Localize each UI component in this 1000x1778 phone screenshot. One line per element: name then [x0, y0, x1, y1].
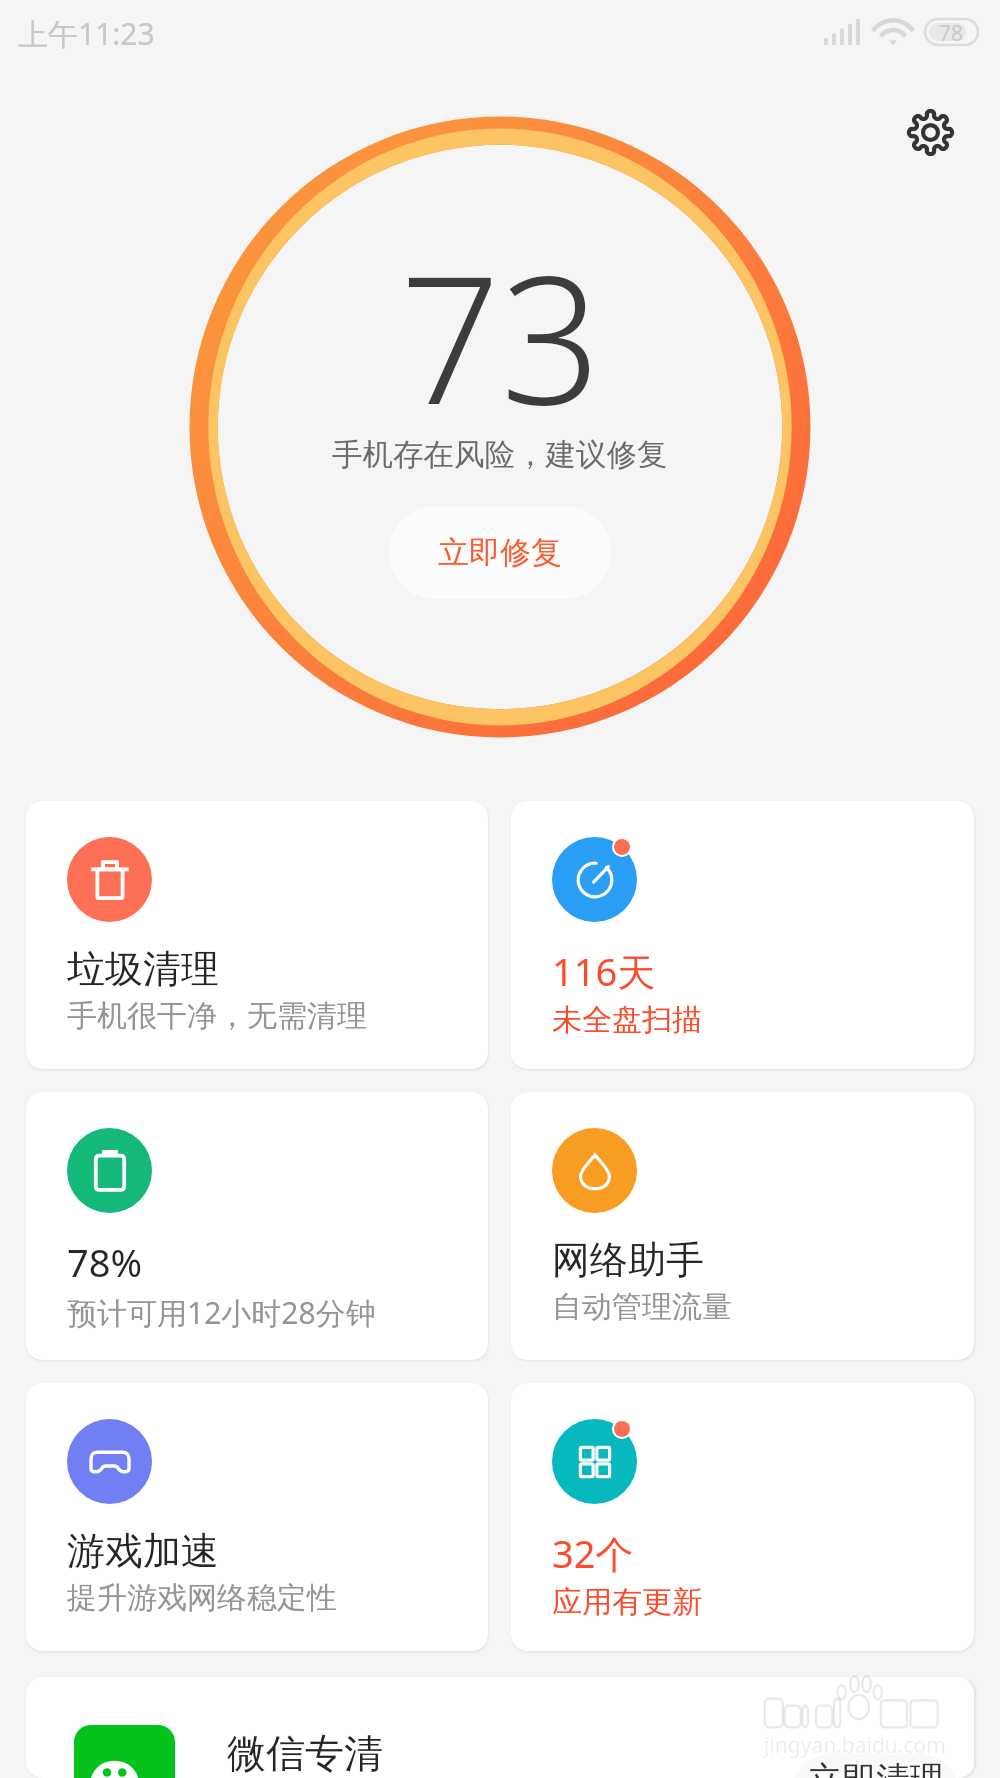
staticText: 78% — [67, 1236, 143, 1288]
button[interactable]: 网络助手 — [511, 1092, 974, 1360]
staticText: 网络助手 — [552, 1236, 704, 1284]
button[interactable]: 立即修复 — [389, 506, 611, 599]
button[interactable]: 116天 — [511, 801, 974, 1069]
staticText: jingyan.baidu.com — [764, 1731, 946, 1760]
staticText: 未全盘扫描 — [552, 1001, 702, 1039]
staticText: 78 — [939, 19, 964, 45]
button[interactable]: 78% — [26, 1092, 488, 1360]
staticText: 73 — [400, 216, 601, 456]
staticText: 116天 — [552, 945, 656, 997]
button[interactable]: 微信专清 — [26, 1677, 974, 1778]
staticText: 上午11:23 — [18, 13, 155, 54]
staticText: 垃圾清理 — [67, 945, 219, 993]
staticText: 游戏加速 — [67, 1527, 219, 1575]
button[interactable]: 垃圾清理 — [26, 801, 488, 1069]
staticText: 立即清理 — [808, 1758, 944, 1778]
button[interactable]: 立即清理 — [792, 1754, 959, 1778]
staticText: 微信专清 — [227, 1729, 383, 1778]
staticText: 提升游戏网络稳定性 — [67, 1579, 337, 1617]
button[interactable]: Settings — [886, 88, 975, 177]
staticText: 手机很干净，无需清理 — [67, 997, 367, 1035]
staticText: 预计可用12小时28分钟 — [67, 1292, 376, 1333]
staticText: 立即修复 — [438, 533, 562, 572]
staticText: 自动管理流量 — [552, 1288, 732, 1326]
staticText: 32个 — [552, 1527, 634, 1579]
button[interactable]: 32个 — [511, 1383, 974, 1651]
button[interactable]: 游戏加速 — [26, 1383, 488, 1651]
staticText: 手机存在风险，建议修复 — [332, 436, 668, 474]
staticText: 应用有更新 — [552, 1583, 702, 1621]
